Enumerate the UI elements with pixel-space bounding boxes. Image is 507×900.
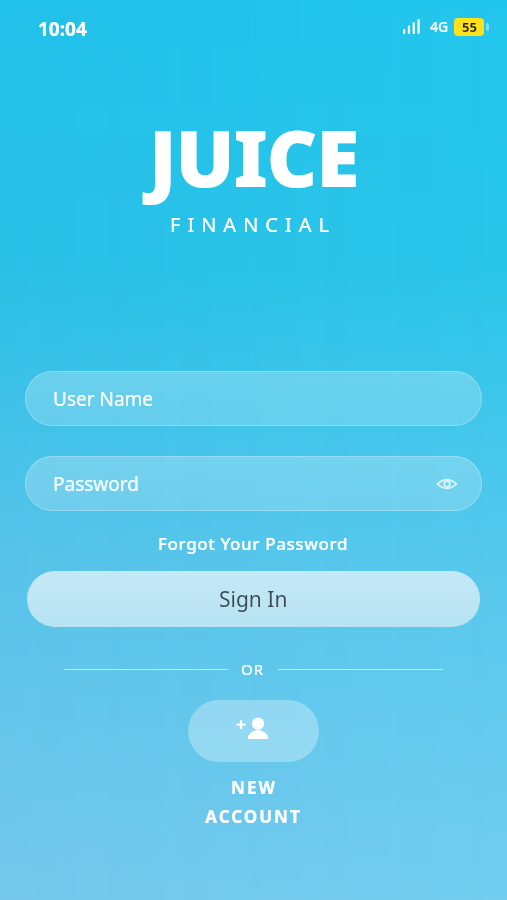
staticText: JUICE <box>149 104 359 210</box>
staticText: 55 <box>462 18 477 36</box>
staticText: Password <box>53 471 139 497</box>
button[interactable]: New Account <box>188 700 319 828</box>
button[interactable]: Password <box>25 456 482 511</box>
staticText: Sign In <box>219 585 288 614</box>
staticText: 4G <box>430 17 449 36</box>
staticText: Forgot Your Password <box>158 532 349 555</box>
staticText: OR <box>241 659 265 679</box>
staticText: 10:04 <box>38 16 87 42</box>
button[interactable]: Forgot Your Password <box>0 528 507 559</box>
staticText: NEW <box>231 776 277 799</box>
staticText: ACCOUNT <box>205 805 302 828</box>
button[interactable]: User Name <box>25 371 482 426</box>
staticText: FINANCIAL <box>170 211 337 238</box>
button[interactable]: Show password <box>432 469 462 499</box>
button[interactable]: Sign In <box>27 571 480 627</box>
staticText: User Name <box>53 386 154 412</box>
